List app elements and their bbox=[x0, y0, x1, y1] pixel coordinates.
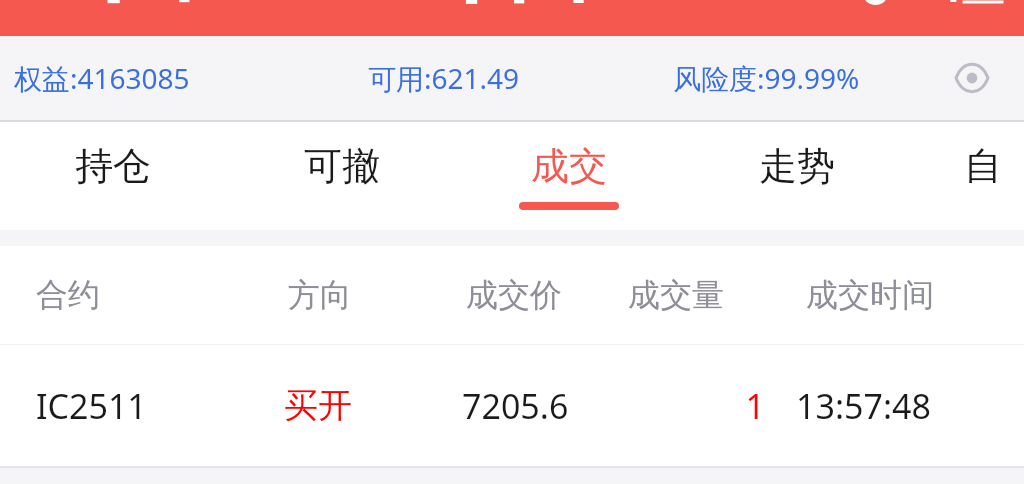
button[interactable]: 可用:621.49 bbox=[368, 59, 520, 97]
staticText: 走势 bbox=[759, 142, 835, 190]
button[interactable]: 可撤 bbox=[258, 122, 426, 230]
button[interactable]: Toggle balance visibility bbox=[950, 56, 994, 100]
staticText: 成交量 bbox=[628, 275, 724, 315]
button[interactable]: 走势 bbox=[713, 122, 881, 230]
staticText: 可用:621.49 bbox=[368, 59, 520, 97]
button[interactable]: 权益:4163085 bbox=[14, 59, 190, 97]
staticText: 成交价 bbox=[466, 275, 562, 315]
staticText: 自 bbox=[964, 142, 1002, 190]
button[interactable]: 自 bbox=[942, 122, 1024, 230]
staticText: 持仓 bbox=[75, 142, 151, 190]
staticText: 权益:4163085 bbox=[14, 59, 190, 97]
staticText: IC2511 bbox=[36, 383, 147, 429]
button[interactable]: 持仓 bbox=[29, 122, 197, 230]
staticText: 方向 bbox=[288, 275, 352, 315]
button[interactable]: IC2511 bbox=[0, 345, 1024, 466]
staticText: 成交 bbox=[531, 142, 607, 190]
staticText: 合约 bbox=[36, 275, 100, 315]
button[interactable]: 成交 bbox=[485, 122, 653, 230]
staticText: 风险度:99.99% bbox=[673, 59, 860, 97]
staticText: 7205.6 bbox=[462, 383, 569, 429]
staticText: 买开 bbox=[284, 384, 352, 427]
staticText: 成交时间 bbox=[806, 275, 934, 315]
button[interactable]: 风险度:99.99% bbox=[673, 59, 860, 97]
staticText: 1 bbox=[628, 383, 765, 429]
staticText: 13:57:48 bbox=[796, 383, 931, 429]
staticText: 可撤 bbox=[304, 142, 380, 190]
